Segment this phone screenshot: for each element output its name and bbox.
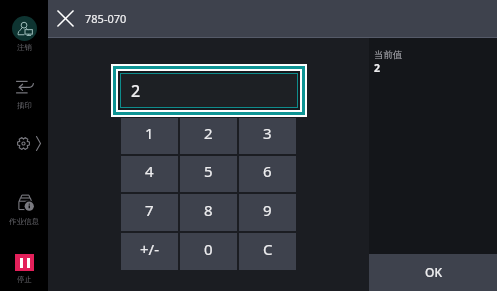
- staticText: 0: [204, 239, 213, 259]
- staticText: C: [263, 239, 273, 259]
- staticText: 7: [145, 200, 154, 220]
- button[interactable]: 0: [180, 233, 237, 270]
- button[interactable]: 4: [121, 156, 178, 192]
- button[interactable]: 9: [239, 194, 296, 231]
- button[interactable]: 5: [180, 156, 237, 192]
- button[interactable]: 2: [180, 118, 237, 154]
- staticText: 3: [263, 123, 272, 143]
- staticText: 1: [145, 123, 154, 143]
- staticText: 9: [263, 200, 272, 220]
- staticText: 4: [145, 161, 154, 181]
- staticText: 785-070: [85, 11, 127, 26]
- button[interactable]: 2: [121, 74, 297, 107]
- staticText: 6: [263, 161, 272, 181]
- button[interactable]: OK: [369, 254, 497, 291]
- staticText: 插印: [17, 101, 32, 110]
- button[interactable]: 7: [121, 194, 178, 231]
- button[interactable]: 注销: [0, 16, 48, 52]
- staticText: 5: [204, 161, 213, 181]
- staticText: 2: [204, 123, 213, 143]
- button[interactable]: 插印: [0, 78, 48, 110]
- staticText: 8: [204, 200, 213, 220]
- button[interactable]: Settings: [0, 132, 48, 156]
- staticText: OK: [425, 264, 442, 280]
- button[interactable]: 停止: [0, 254, 48, 284]
- button[interactable]: Close: [48, 1, 83, 36]
- button[interactable]: C: [239, 233, 296, 270]
- button[interactable]: 作业信息: [0, 193, 48, 226]
- staticText: +/-: [140, 239, 159, 259]
- staticText: 2: [131, 80, 141, 102]
- button[interactable]: +/-: [121, 233, 178, 270]
- button[interactable]: 8: [180, 194, 237, 231]
- button[interactable]: 6: [239, 156, 296, 192]
- staticText: 作业信息: [9, 217, 39, 226]
- button[interactable]: 3: [239, 118, 296, 154]
- staticText: 停止: [17, 275, 32, 284]
- staticText: 注销: [17, 43, 32, 52]
- button[interactable]: 1: [121, 118, 178, 154]
- staticText: 当前值: [374, 49, 403, 61]
- staticText: 2: [374, 61, 381, 75]
